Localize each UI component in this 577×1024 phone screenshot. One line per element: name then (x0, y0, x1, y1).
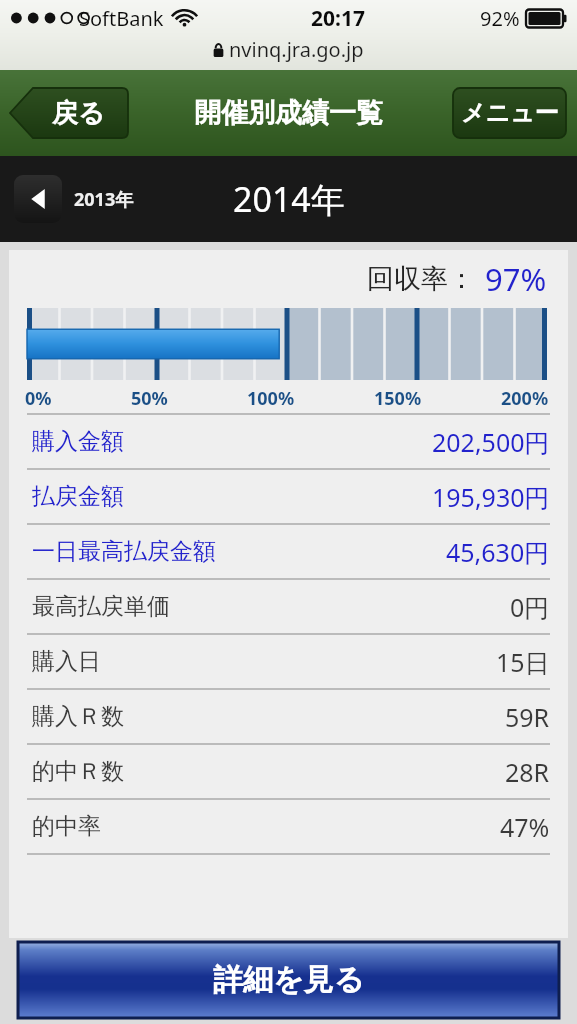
button[interactable]: 詳細を見る (18, 942, 559, 1018)
button[interactable]: 戻る (10, 88, 128, 138)
staticText: SoftBank (79, 5, 164, 32)
staticText: 開催別成績一覧 (194, 96, 383, 130)
staticText: 28R (505, 755, 550, 789)
staticText: 47% (500, 810, 550, 844)
button[interactable]: 的中Ｒ数 (27, 745, 550, 798)
staticText: 50% (131, 386, 168, 411)
staticText: 払戻金額 (32, 482, 124, 511)
staticText: 195,930円 (432, 480, 550, 514)
staticText: 97% (485, 258, 547, 300)
staticText: nvinq.jra.go.jp (229, 36, 364, 63)
staticText: 的中率 (32, 812, 101, 841)
staticText: 的中Ｒ数 (32, 757, 124, 786)
staticText: 0% (25, 386, 52, 411)
staticText: 購入Ｒ数 (32, 702, 124, 731)
staticText: 59R (505, 700, 550, 734)
staticText: 購入日 (32, 647, 101, 676)
staticText: 最高払戻単価 (32, 592, 170, 621)
button[interactable]: 購入Ｒ数 (27, 690, 550, 743)
staticText: 202,500円 (432, 425, 550, 459)
staticText: 購入金額 (32, 427, 124, 456)
button[interactable]: 一日最高払戻金額 (27, 525, 550, 578)
staticText: 15日 (496, 645, 550, 679)
staticText: 100% (247, 386, 295, 411)
staticText: メニュー (461, 98, 559, 128)
staticText: 92% (480, 5, 520, 32)
staticText: 200% (501, 386, 549, 411)
staticText: 0円 (510, 590, 550, 624)
button[interactable]: Previous year 2013 (14, 175, 134, 223)
staticText: 150% (374, 386, 422, 411)
staticText: 2013年 (74, 187, 134, 212)
staticText: 45,630円 (446, 535, 550, 569)
button[interactable]: メニュー (453, 88, 566, 138)
staticText: 詳細を見る (213, 961, 365, 999)
button[interactable]: 購入日 (27, 635, 550, 688)
staticText: 回収率： (367, 262, 475, 296)
button[interactable]: 的中率 (27, 800, 550, 853)
button[interactable]: 購入金額 (27, 415, 550, 468)
button[interactable]: 払戻金額 (27, 470, 550, 523)
button[interactable]: 最高払戻単価 (27, 580, 550, 633)
staticText: 20:17 (311, 4, 365, 33)
staticText: 2014年 (233, 176, 345, 222)
staticText: 一日最高払戻金額 (32, 537, 216, 566)
staticText: 戻る (52, 97, 105, 130)
